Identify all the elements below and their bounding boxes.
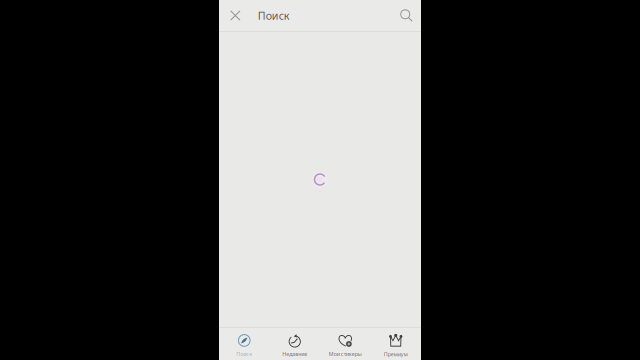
button[interactable]: Поиск [219,328,269,360]
button[interactable]: Search [393,0,420,32]
button[interactable]: Close [222,0,248,31]
button[interactable]: Недавние [269,328,320,360]
staticText: Премиум [384,351,408,358]
staticText: Поиск [258,8,290,23]
button[interactable]: Мои стикеры [320,328,370,360]
staticText: Поиск [236,350,252,358]
button[interactable]: Премиум [370,328,421,360]
staticText: Недавние [282,350,307,358]
staticText: Мои стикеры [329,350,362,358]
